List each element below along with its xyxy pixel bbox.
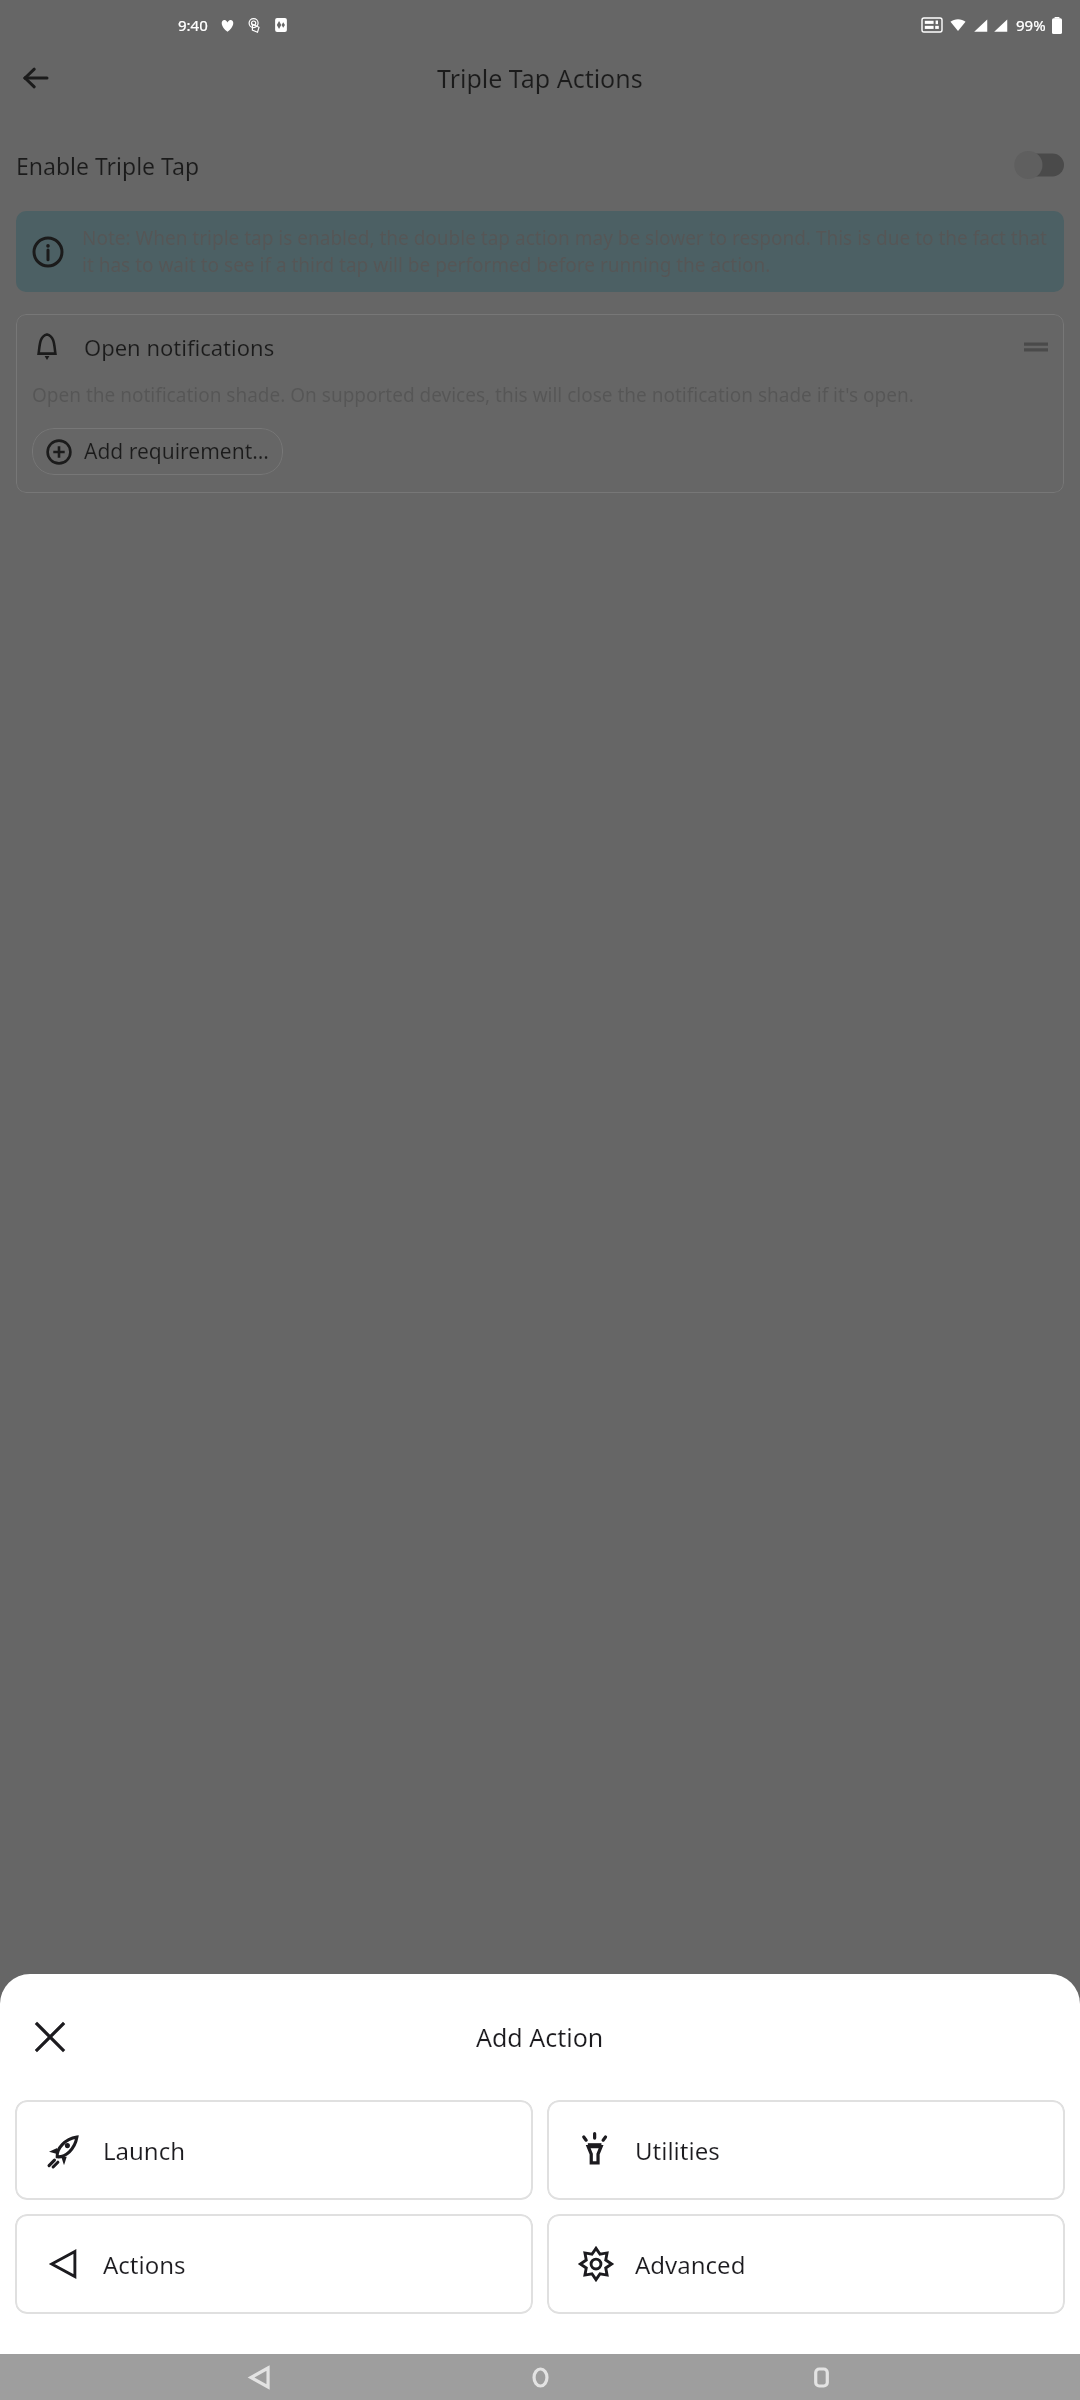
staticText: 99%: [1016, 15, 1046, 35]
button[interactable]: Back: [12, 54, 60, 102]
button[interactable]: Advanced: [547, 2214, 1065, 2314]
button[interactable]: Utilities: [547, 2100, 1065, 2200]
button[interactable]: Enable Triple Tap: [0, 141, 1080, 189]
button[interactable]: Add requirement…: [32, 428, 283, 475]
button[interactable]: Recents: [799, 2355, 843, 2399]
button[interactable]: Home: [518, 2355, 562, 2399]
staticText: Advanced: [635, 2248, 746, 2281]
staticText: Triple Tap Actions: [437, 61, 643, 95]
staticText: Add Action: [476, 2020, 604, 2054]
staticText: Enable Triple Tap: [16, 150, 200, 181]
button[interactable]: Open notifications: [16, 314, 1064, 493]
staticText: Actions: [103, 2248, 186, 2281]
staticText: 9:40: [178, 15, 208, 35]
button[interactable]: Actions: [15, 2214, 533, 2314]
staticText: Add requirement…: [84, 437, 269, 466]
staticText: Open the notification shade. On supporte…: [32, 382, 914, 408]
staticText: Utilities: [635, 2134, 720, 2167]
staticText: Open notifications: [84, 332, 275, 362]
staticText: Launch: [103, 2134, 186, 2167]
staticText: Note: When triple tap is enabled, the do…: [82, 225, 1048, 278]
button[interactable]: Back: [237, 2355, 281, 2399]
button[interactable]: Launch: [15, 2100, 533, 2200]
button[interactable]: Close: [22, 2009, 78, 2065]
